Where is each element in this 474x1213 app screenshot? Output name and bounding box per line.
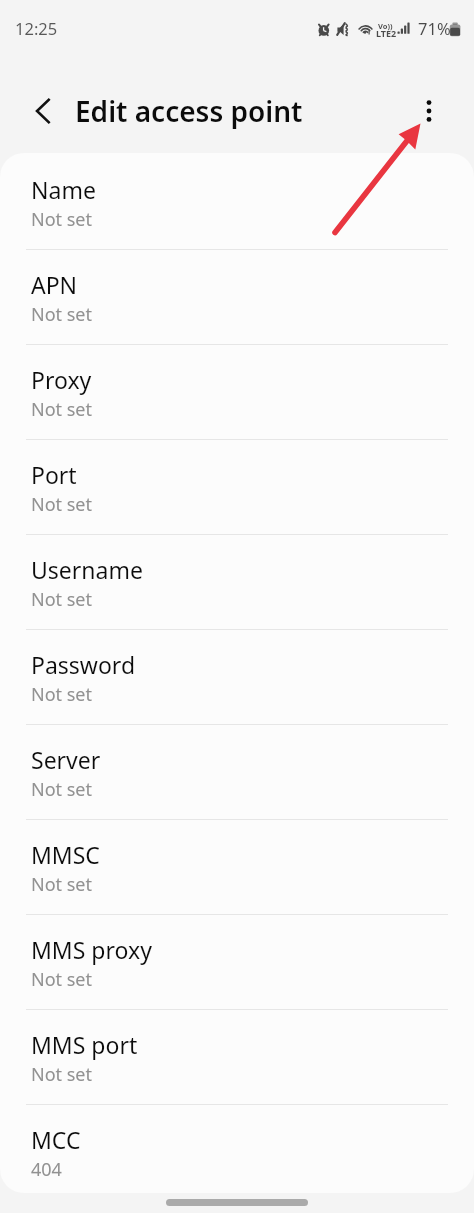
staticText: Not set — [31, 682, 93, 707]
button[interactable]: APN — [0, 250, 474, 345]
staticText: 71% — [418, 17, 451, 39]
staticText: Not set — [31, 967, 93, 992]
staticText: Not set — [31, 777, 93, 802]
staticText: Not set — [31, 492, 93, 517]
staticText: Name — [31, 174, 96, 205]
staticText: MMSC — [31, 839, 100, 870]
button[interactable]: Name — [0, 155, 474, 250]
staticText: Port — [31, 459, 77, 490]
button[interactable]: Server — [0, 725, 474, 820]
button[interactable]: Back — [24, 92, 62, 130]
staticText: MMS port — [31, 1029, 138, 1060]
button[interactable]: MMSC — [0, 820, 474, 915]
staticText: 404 — [31, 1157, 62, 1182]
staticText: Password — [31, 649, 136, 680]
staticText: 12:25 — [15, 17, 58, 39]
staticText: Vo)) — [378, 21, 393, 31]
staticText: Not set — [31, 872, 93, 897]
button[interactable]: MMS port — [0, 1010, 474, 1105]
staticText: Not set — [31, 397, 93, 422]
button[interactable]: MMS proxy — [0, 915, 474, 1010]
staticText: MMS proxy — [31, 934, 152, 965]
staticText: MCC — [31, 1124, 81, 1155]
button[interactable]: MCC — [0, 1105, 474, 1193]
staticText: Edit access point — [75, 92, 303, 130]
staticText: Not set — [31, 207, 93, 232]
staticText: Not set — [31, 587, 93, 612]
button[interactable]: More options — [414, 96, 444, 126]
staticText: Server — [31, 744, 101, 775]
staticText: Username — [31, 554, 143, 585]
staticText: APN — [31, 269, 78, 300]
staticText: Proxy — [31, 364, 92, 395]
button[interactable]: Username — [0, 535, 474, 630]
staticText: Not set — [31, 1062, 93, 1087]
button[interactable]: Password — [0, 630, 474, 725]
button[interactable]: Proxy — [0, 345, 474, 440]
staticText: Not set — [31, 302, 93, 327]
button[interactable]: Port — [0, 440, 474, 535]
staticText: LTE2 — [376, 27, 397, 39]
